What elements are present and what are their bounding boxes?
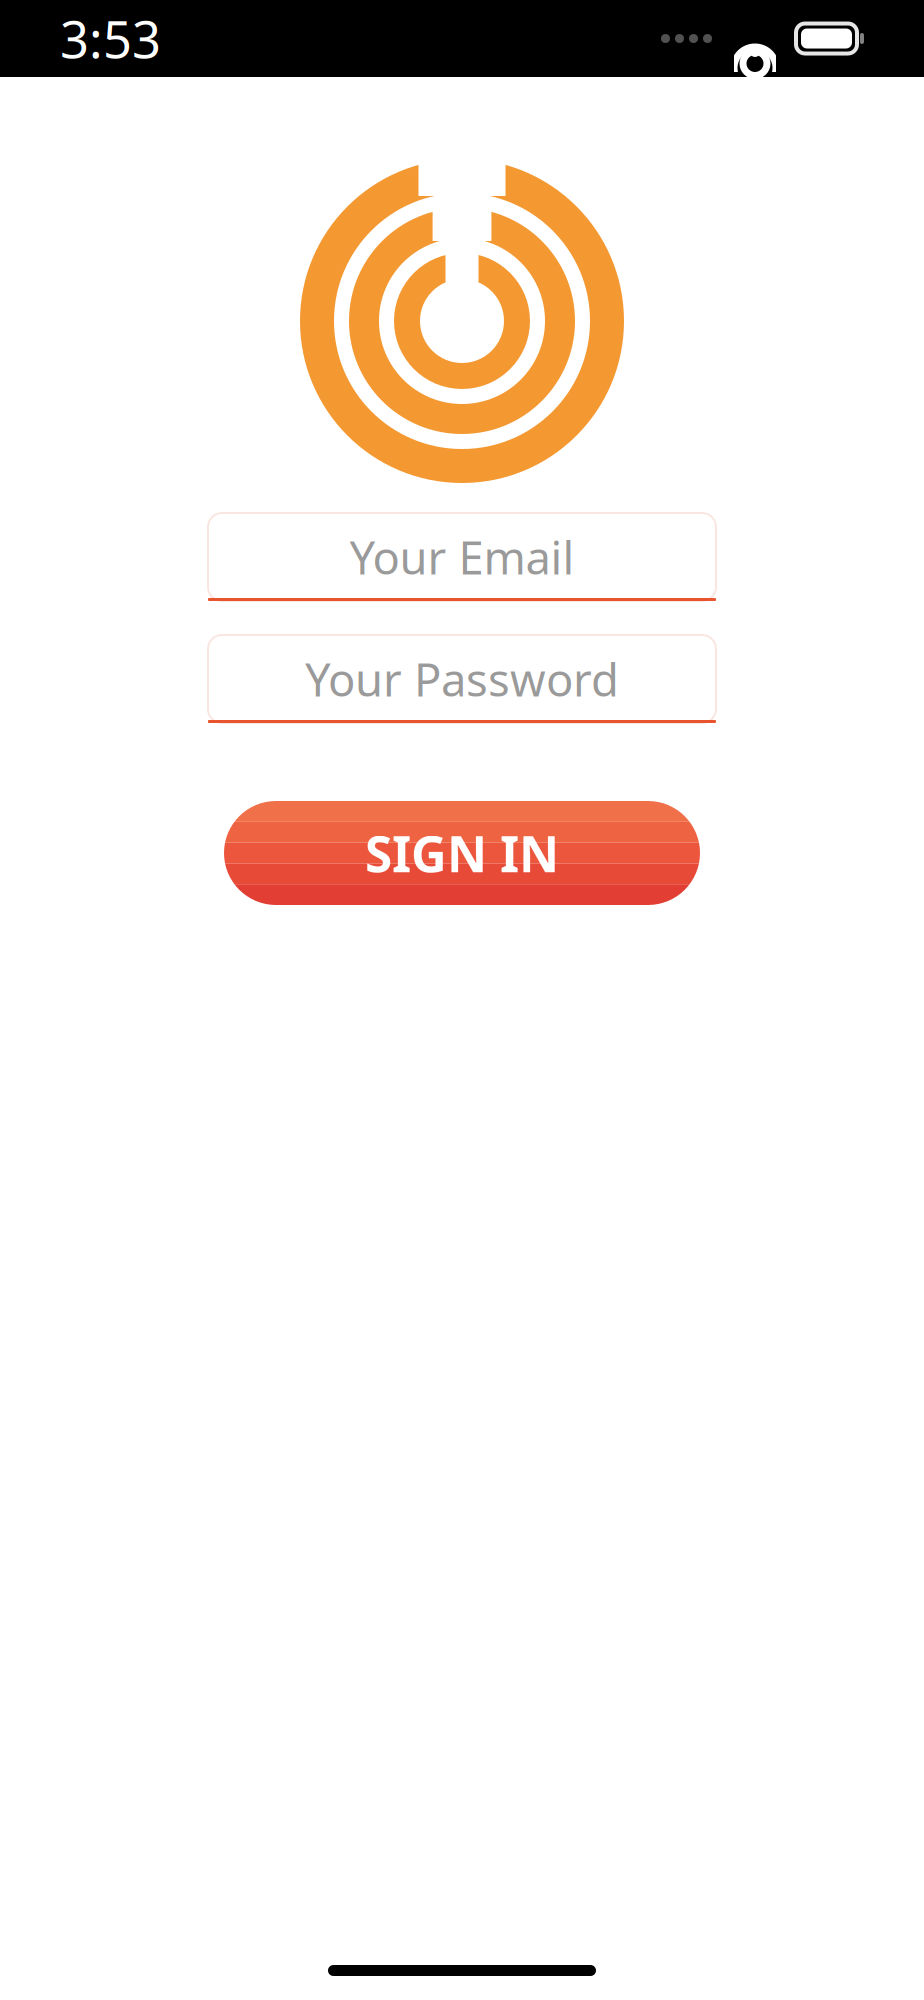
button[interactable]: Your Password bbox=[208, 635, 716, 723]
staticText: Your Email bbox=[349, 527, 574, 587]
staticText: 3:53 bbox=[60, 5, 161, 72]
staticText: SIGN IN bbox=[365, 820, 559, 886]
staticText: Your Password bbox=[305, 649, 619, 709]
button[interactable]: SIGN IN bbox=[224, 801, 700, 905]
button[interactable]: Your Email bbox=[208, 513, 716, 601]
